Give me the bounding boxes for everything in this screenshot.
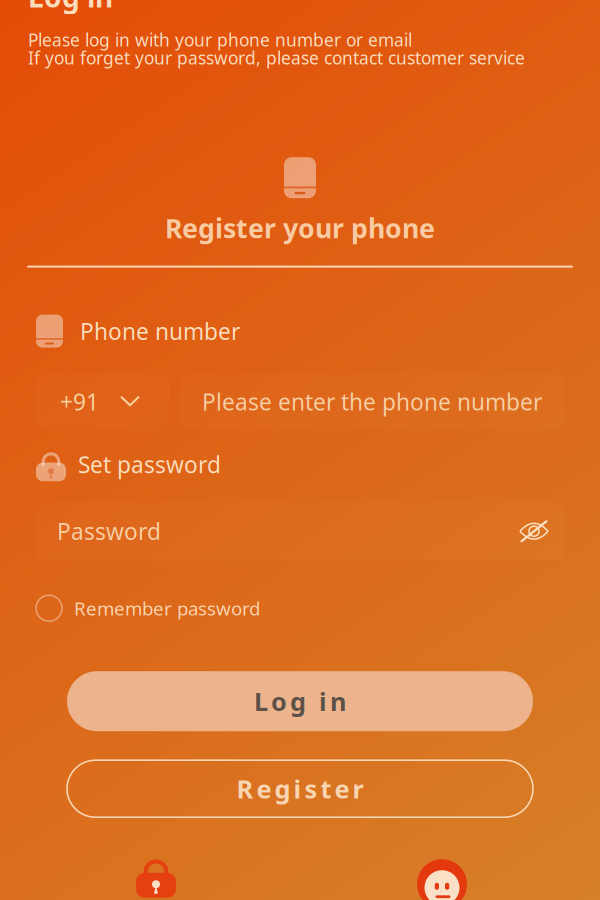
button[interactable]: Log in bbox=[67, 671, 533, 731]
staticText: Log in bbox=[28, 0, 113, 15]
button[interactable]: +91 bbox=[35, 374, 170, 430]
staticText: Log in bbox=[254, 684, 346, 718]
staticText: Please log in with your phone number or … bbox=[28, 28, 412, 51]
button[interactable]: Please enter the phone number bbox=[179, 374, 565, 430]
staticText: Register your phone bbox=[165, 210, 435, 246]
button[interactable]: Forgot password bbox=[66, 853, 246, 900]
staticText: Remember password bbox=[74, 596, 260, 621]
staticText: Password bbox=[57, 516, 161, 546]
staticText: Set password bbox=[78, 449, 221, 479]
staticText: Register bbox=[236, 772, 363, 805]
button[interactable]: Remember password bbox=[0, 595, 600, 621]
staticText: If you forget your password, please cont… bbox=[28, 46, 525, 69]
button[interactable]: Password bbox=[35, 502, 517, 560]
button[interactable]: Customer service bbox=[352, 850, 532, 900]
staticText: Phone number bbox=[80, 316, 240, 346]
button[interactable]: Show password bbox=[517, 502, 551, 560]
staticText: Please enter the phone number bbox=[202, 387, 542, 417]
button[interactable]: Register bbox=[67, 760, 533, 817]
staticText: +91 bbox=[60, 387, 99, 417]
